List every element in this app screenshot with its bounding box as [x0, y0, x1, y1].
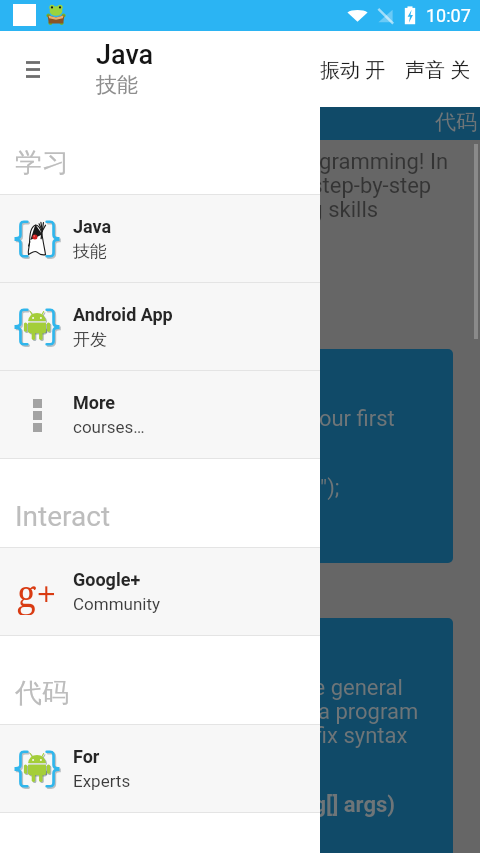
staticText: 振动 开	[320, 56, 386, 83]
staticText: 学习	[15, 146, 69, 180]
staticText: Let us get started and write your first	[36, 406, 395, 432]
staticText: Now we will take a look at the general s…	[36, 675, 419, 748]
staticText: 技能	[96, 72, 138, 98]
staticText: Hello and welcome to Java programming! I…	[18, 149, 449, 222]
staticText: 技能	[73, 241, 107, 262]
staticText: Java	[73, 216, 112, 237]
staticText: 10:07	[426, 5, 471, 26]
staticText: 代码	[435, 109, 477, 135]
staticText: courses…	[73, 417, 145, 437]
button[interactable]: Android App	[0, 283, 320, 370]
staticText: More	[73, 392, 116, 413]
staticText: Java	[96, 39, 154, 71]
staticText: 声音 关	[405, 56, 471, 83]
staticText: public static void main(String[] args)	[36, 792, 396, 818]
button[interactable]: Open navigation menu	[0, 31, 66, 107]
staticText: Android App	[73, 304, 173, 325]
staticText: For	[73, 746, 100, 767]
staticText: System.out.println("Welcome");	[36, 475, 340, 501]
button[interactable]: g+	[0, 548, 320, 635]
button[interactable]: Java	[0, 195, 320, 282]
staticText: g+	[17, 569, 57, 615]
staticText: Google+	[73, 569, 141, 590]
staticText: 代码	[15, 676, 69, 710]
staticText: Community	[73, 594, 161, 614]
button[interactable]: 振动 开	[316, 44, 390, 95]
staticText: Experts	[73, 771, 131, 791]
staticText: Interact	[15, 500, 111, 533]
button[interactable]: For	[0, 725, 320, 812]
staticText: 开发	[73, 329, 107, 350]
button[interactable]: 声音 关	[401, 44, 475, 95]
button[interactable]: More	[0, 371, 320, 458]
